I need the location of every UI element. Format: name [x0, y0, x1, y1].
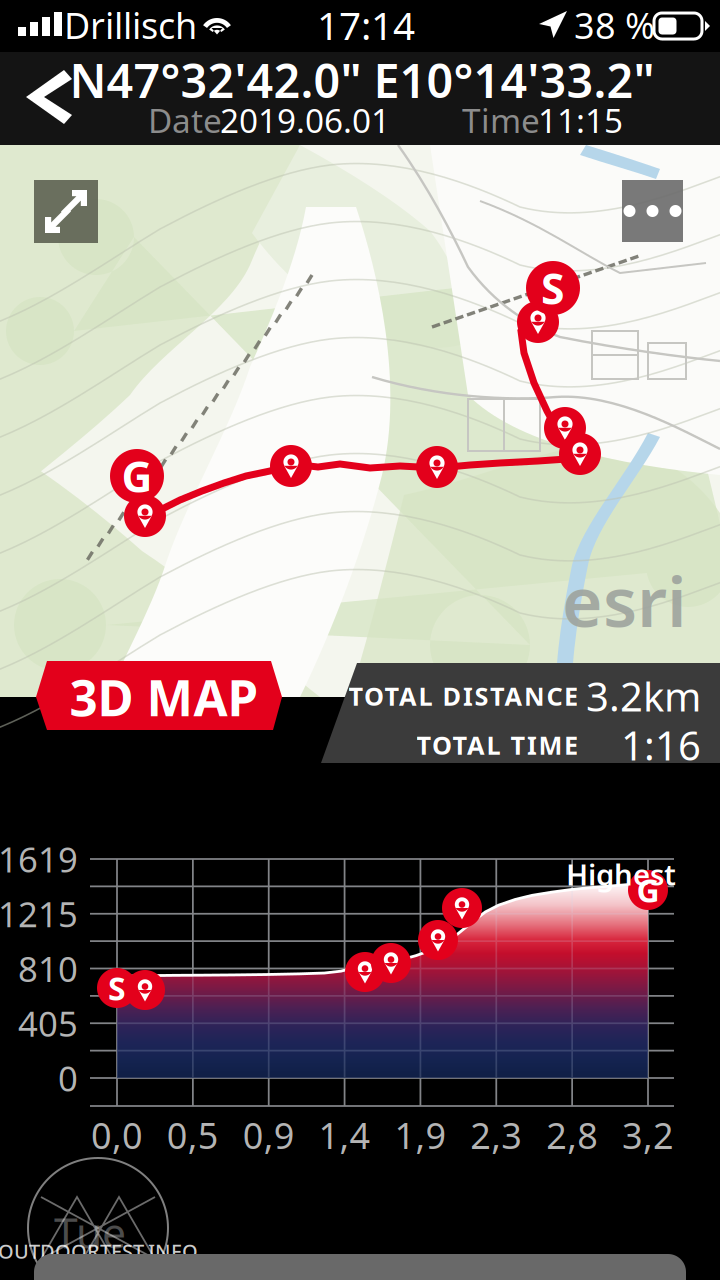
staticText: 3D MAP — [69, 664, 258, 730]
staticText: 3,2 — [622, 1111, 674, 1159]
staticText: Drillisch — [64, 1, 197, 49]
staticText: 1,4 — [319, 1111, 371, 1159]
staticText: 2,8 — [546, 1111, 598, 1159]
staticText: 0,9 — [243, 1111, 295, 1159]
staticText: S — [108, 967, 126, 1009]
button[interactable]: 3D MAP — [36, 661, 286, 731]
staticText: 2019.06.01 — [220, 98, 390, 142]
staticText: Time — [462, 98, 540, 142]
staticText: S — [541, 260, 565, 316]
button[interactable]: More options — [622, 180, 683, 242]
staticText: 810 — [18, 945, 78, 991]
staticText: esri — [562, 554, 687, 646]
staticText: 1:16 — [621, 718, 701, 771]
button[interactable]: N47°32'42.0" E10°14'33.2" — [34, 1254, 686, 1280]
staticText: 0 — [58, 1055, 78, 1101]
staticText: 17:14 — [317, 0, 415, 51]
button[interactable]: Expand map — [34, 180, 98, 243]
staticText: 3.2km — [586, 669, 701, 722]
staticText: 0,5 — [167, 1111, 219, 1159]
staticText: TOTAL TIME — [416, 728, 578, 762]
staticText: OUTDOORTEST.INFO — [0, 1238, 198, 1264]
staticText: 405 — [18, 1000, 78, 1046]
staticText: 1619 — [0, 836, 78, 882]
button[interactable]: Back — [4, 52, 94, 142]
staticText: G — [636, 869, 659, 911]
staticText: 11:15 — [538, 98, 623, 142]
staticText: G — [121, 448, 152, 504]
staticText: 38 % — [574, 1, 655, 49]
staticText: Date — [148, 98, 222, 142]
staticText: N47°32'42.0" E10°14'33.2" — [69, 49, 654, 111]
staticText: 0,0 — [91, 1111, 143, 1159]
staticText: Tue — [54, 1204, 126, 1260]
staticText: Highest — [566, 854, 676, 893]
staticText: 1,9 — [394, 1111, 446, 1159]
staticText: 2,3 — [470, 1111, 522, 1159]
staticText: 1215 — [0, 891, 78, 937]
staticText: TOTAL DISTANCE — [348, 679, 578, 713]
